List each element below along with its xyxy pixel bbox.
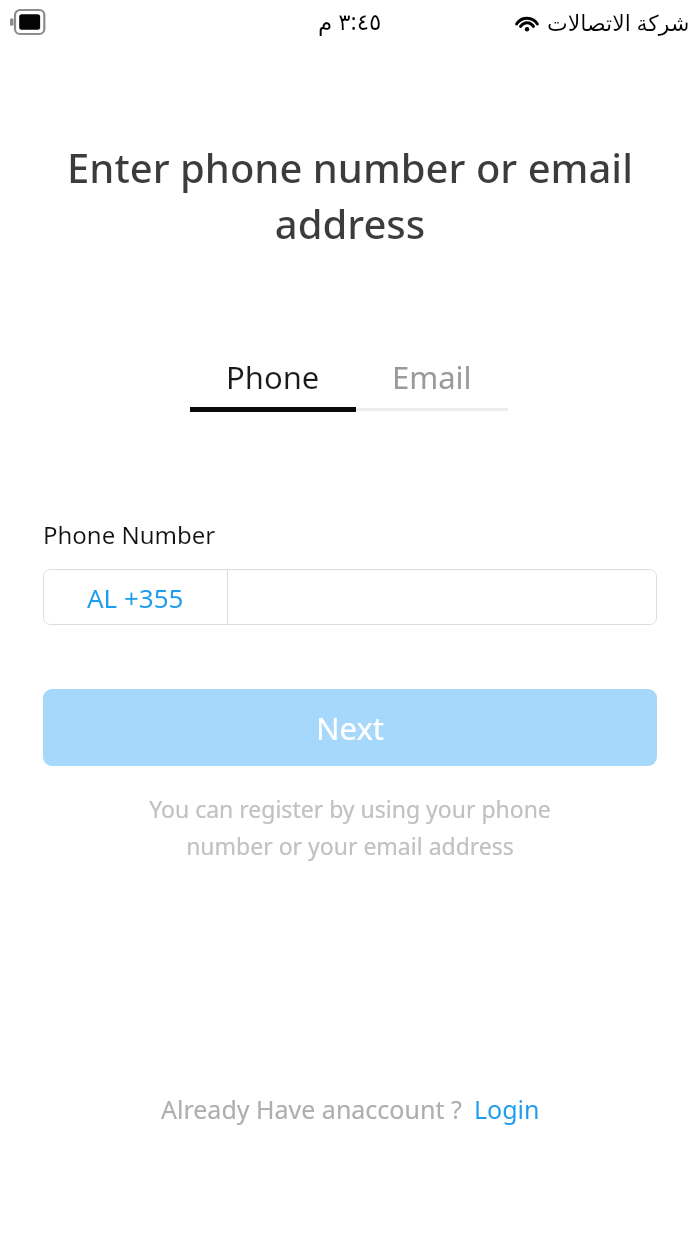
button[interactable]: Phone [190,346,356,408]
staticText: You can register by using your phone num… [105,793,595,862]
staticText: Email [392,356,472,398]
staticText: AL +355 [87,580,184,615]
staticText: Phone [226,356,320,398]
staticText: Next [316,707,385,749]
staticText: Enter phone number or email address [60,140,640,251]
staticText: Already Have anaccount ? [161,1092,462,1126]
staticText: شركة الاتصالات [547,7,690,37]
button[interactable]: Phone number input [228,569,657,625]
button[interactable]: Email [356,346,508,408]
button[interactable]: Login [474,1092,540,1126]
staticText: Login [474,1092,540,1126]
button[interactable]: Next [43,689,657,766]
button[interactable]: AL +355 [43,569,227,625]
staticText: Phone Number [43,518,216,551]
staticText: ٣:٤٥ م [318,5,382,36]
